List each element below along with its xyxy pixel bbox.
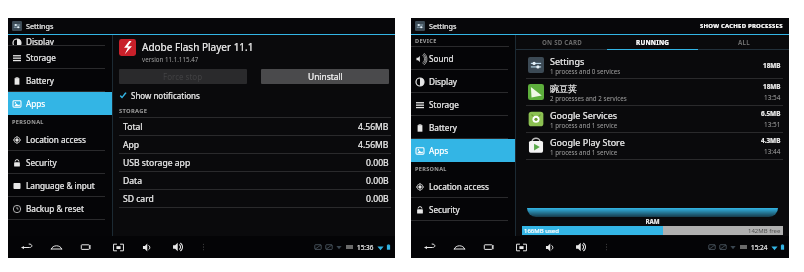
button[interactable]: Storage — [8, 46, 112, 69]
button[interactable]: Home — [46, 238, 66, 256]
staticText: Apps — [429, 145, 449, 156]
staticText: Location access — [26, 134, 86, 145]
staticText: Force stop — [163, 71, 203, 82]
staticText: Uninstall — [308, 71, 343, 82]
button[interactable]: Volume down — [541, 238, 561, 256]
button[interactable]: Location access — [8, 128, 112, 151]
staticText: DEVICE — [415, 37, 437, 45]
staticText: 4.56MB — [358, 121, 389, 133]
staticText: Display — [26, 36, 54, 47]
staticText: 15:36 — [357, 243, 374, 252]
staticText: App — [123, 139, 140, 151]
button[interactable]: Screenshot — [511, 238, 531, 256]
staticText: 1 process and 1 service — [550, 148, 618, 156]
button[interactable]: Battery — [411, 116, 515, 139]
staticText: Language & input — [26, 180, 95, 191]
staticText: Google Services — [550, 109, 618, 121]
button[interactable]: Recent apps — [479, 238, 499, 256]
staticText: version 11.1.115.47 — [142, 55, 199, 63]
staticText: 18MB — [763, 82, 781, 91]
staticText: 166MB used — [524, 227, 559, 235]
staticText: STORAGE — [119, 107, 148, 115]
staticText: USB storage app — [123, 157, 191, 169]
staticText: 2 processes and 2 services — [550, 94, 627, 102]
button[interactable]: Security — [8, 151, 112, 174]
button[interactable]: Show notifications — [119, 89, 200, 102]
button[interactable]: Total — [119, 118, 395, 135]
staticText: RUNNING — [636, 38, 670, 47]
button[interactable]: Home — [449, 238, 469, 256]
staticText: Storage — [26, 52, 56, 63]
staticText: 18MB — [763, 61, 781, 70]
button[interactable]: Back — [419, 238, 439, 256]
button[interactable]: More options — [196, 238, 210, 256]
staticText: 15:24 — [751, 243, 768, 252]
staticText: Adobe Flash Player 11.1 — [142, 40, 254, 54]
staticText: 6.5MB — [761, 109, 781, 118]
button[interactable]: Volume up — [168, 238, 188, 256]
button[interactable]: Storage — [411, 93, 515, 116]
button[interactable]: Language & input — [8, 174, 112, 197]
staticText: 1 process and 0 services — [550, 67, 621, 75]
staticText: Apps — [26, 98, 46, 109]
button[interactable]: Force stop — [119, 69, 247, 84]
staticText: Sound — [429, 53, 454, 64]
button[interactable]: ON SD CARD — [516, 35, 607, 49]
staticText: Data — [123, 175, 143, 187]
button[interactable]: SHOW CACHED PROCESSES — [698, 22, 785, 30]
button[interactable]: Google Play Store — [516, 133, 789, 160]
staticText: 0.00B — [366, 175, 389, 187]
staticText: ALL — [738, 38, 750, 46]
staticText: 4.3MB — [761, 136, 781, 145]
button[interactable]: Uninstall — [261, 69, 389, 84]
staticText: Total — [123, 121, 143, 133]
button[interactable]: Security — [411, 198, 515, 221]
staticText: SHOW CACHED PROCESSES — [700, 22, 783, 30]
staticText: Backup & reset — [26, 203, 84, 214]
button[interactable]: Volume up — [571, 238, 591, 256]
button[interactable]: 豌豆荚 — [516, 79, 789, 106]
staticText: 13:54 — [764, 93, 781, 102]
button[interactable]: Location access — [411, 175, 515, 198]
button[interactable]: Apps — [8, 92, 112, 115]
button[interactable]: USB storage app — [119, 154, 395, 171]
staticText: 豌豆荚 — [550, 83, 577, 94]
button[interactable]: Data — [119, 172, 395, 189]
staticText: Settings — [429, 21, 457, 31]
button[interactable]: Display — [411, 70, 515, 93]
staticText: 13:44 — [764, 147, 781, 156]
staticText: PERSONAL — [12, 118, 44, 126]
staticText: Show notifications — [131, 90, 200, 101]
button[interactable]: Back — [16, 238, 36, 256]
button[interactable]: Recent apps — [76, 238, 96, 256]
button[interactable]: App — [119, 136, 395, 153]
button[interactable]: Apps — [411, 139, 515, 162]
staticText: Storage — [429, 99, 459, 110]
staticText: Settings — [26, 21, 54, 31]
button[interactable]: RUNNING — [607, 35, 698, 49]
button[interactable]: Backup & reset — [8, 197, 112, 220]
staticText: Location access — [429, 181, 489, 192]
button[interactable]: Volume down — [138, 238, 158, 256]
staticText: 0.00B — [366, 157, 389, 169]
button[interactable]: More options — [599, 238, 613, 256]
button[interactable]: ALL — [698, 35, 789, 49]
staticText: ON SD CARD — [542, 38, 582, 46]
button[interactable]: Settings — [516, 52, 789, 79]
staticText: 13:51 — [764, 120, 781, 129]
staticText: Security — [429, 204, 460, 215]
staticText: 4.56MB — [358, 139, 389, 151]
staticText: Display — [429, 76, 457, 87]
staticText: PERSONAL — [415, 165, 447, 173]
button[interactable]: Battery — [8, 69, 112, 92]
staticText: Google Play Store — [550, 136, 625, 148]
button[interactable]: Screenshot — [108, 238, 128, 256]
button[interactable]: Sound — [411, 47, 515, 70]
button[interactable]: Google Services — [516, 106, 789, 133]
staticText: 142MB free — [748, 227, 781, 235]
staticText: Battery — [26, 75, 55, 86]
staticText: 0.00B — [366, 193, 389, 205]
staticText: RAM — [522, 217, 783, 225]
staticText: SD card — [123, 193, 154, 205]
button[interactable]: SD card — [119, 190, 395, 207]
